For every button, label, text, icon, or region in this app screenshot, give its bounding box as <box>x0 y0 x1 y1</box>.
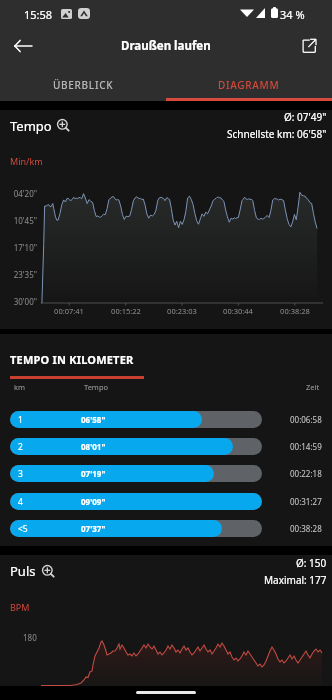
staticText: 06'58" <box>81 414 106 425</box>
staticText: Tempo <box>10 117 52 135</box>
staticText: 3 <box>18 468 23 480</box>
staticText: 09'09" <box>81 496 106 507</box>
staticText: 07'37" <box>81 523 106 534</box>
staticText: 30'00" <box>4 296 37 307</box>
staticText: 00:15:22 <box>106 306 146 316</box>
staticText: Maximal: 177 <box>264 573 327 587</box>
button[interactable]: DIAGRAMM <box>166 70 332 99</box>
staticText: ÜBERBLICK <box>53 78 114 92</box>
staticText: 10'45" <box>4 215 37 226</box>
staticText: 04'20" <box>4 188 37 199</box>
staticText: 08'01" <box>81 441 106 452</box>
staticText: Ø: 150 <box>296 556 327 570</box>
staticText: 00:14:59 <box>290 441 322 452</box>
staticText: 00:07:41 <box>49 306 89 316</box>
staticText: km <box>14 382 26 392</box>
staticText: DIAGRAMM <box>218 78 280 92</box>
staticText: Min/km <box>10 155 43 167</box>
button[interactable]: <5 <box>0 520 332 537</box>
button[interactable]: 1 <box>0 411 332 428</box>
staticText: 00:38:28 <box>275 306 315 316</box>
staticText: 00:30:44 <box>218 306 258 316</box>
staticText: 180 <box>23 632 37 643</box>
staticText: <5 <box>18 523 28 535</box>
staticText: 1 <box>18 414 23 426</box>
staticText: Schnellste km: 06'58" <box>227 127 327 141</box>
staticText: Draußen laufen <box>121 38 211 54</box>
button[interactable]: Back <box>3 26 43 66</box>
staticText: 23'35" <box>4 269 37 280</box>
staticText: Zeit <box>306 382 320 392</box>
staticText: 07'19" <box>81 468 106 479</box>
button[interactable]: ÜBERBLICK <box>0 70 166 99</box>
staticText: BPM <box>10 601 30 613</box>
button[interactable]: 4 <box>0 493 332 510</box>
staticText: 00:23:03 <box>162 306 202 316</box>
staticText: Tempo <box>84 382 109 392</box>
staticText: 00:06:58 <box>290 414 322 425</box>
staticText: 4 <box>18 496 23 508</box>
staticText: 17'10" <box>4 242 37 253</box>
staticText: 00:22:18 <box>290 468 322 479</box>
staticText: Ø: 07'49" <box>284 110 327 124</box>
staticText: 2 <box>18 441 23 453</box>
staticText: 15:58 <box>24 7 53 22</box>
staticText: Puls <box>10 562 36 580</box>
button[interactable]: Share <box>289 26 329 66</box>
staticText: 00:38:28 <box>290 523 322 534</box>
staticText: 00:31:27 <box>290 496 322 507</box>
staticText: 34 % <box>280 7 305 22</box>
button[interactable]: 2 <box>0 438 332 455</box>
staticText: TEMPO IN KILOMETER <box>10 352 134 367</box>
button[interactable]: 3 <box>0 465 332 482</box>
